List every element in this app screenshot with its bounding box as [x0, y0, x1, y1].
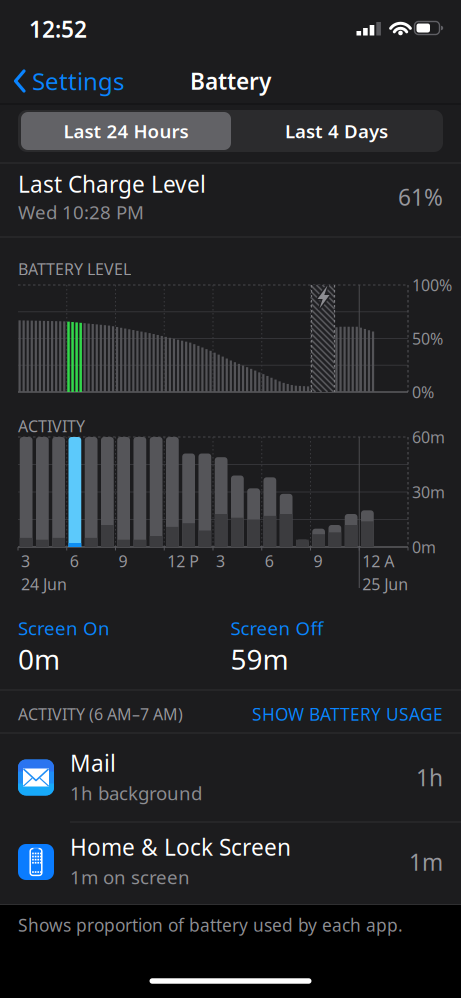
staticText: Screen Off — [230, 616, 323, 640]
staticText: 100% — [412, 274, 452, 296]
staticText: Mail — [70, 748, 116, 778]
staticText: 9 — [118, 550, 127, 572]
staticText: 24 Jun — [21, 573, 67, 595]
staticText: 3 — [21, 550, 30, 572]
staticText: Screen On — [18, 616, 110, 640]
staticText: 25 Jun — [362, 573, 408, 595]
staticText: 6 — [70, 550, 79, 572]
staticText: 1m — [409, 847, 443, 877]
staticText: Battery — [190, 66, 271, 96]
staticText: Wed 10:28 PM — [18, 200, 144, 224]
button[interactable]: Settings — [14, 59, 144, 103]
staticText: BATTERY LEVEL — [18, 258, 131, 280]
staticText: 3 — [216, 550, 225, 572]
staticText: Last 24 Hours — [63, 119, 188, 143]
staticText: 50% — [412, 328, 443, 349]
staticText: 1h — [416, 762, 443, 792]
staticText: 0m — [18, 640, 60, 678]
staticText: Home & Lock Screen — [70, 832, 291, 862]
staticText: 9 — [313, 550, 322, 572]
staticText: 12 P — [167, 550, 199, 572]
staticText: 6 — [265, 550, 274, 572]
staticText: 12:52 — [29, 14, 87, 44]
staticText: Last Charge Level — [18, 169, 206, 199]
staticText: 1m on screen — [70, 865, 190, 889]
staticText: 30m — [412, 481, 445, 503]
button[interactable]: Mail — [0, 733, 461, 822]
button[interactable]: Last 24 Hours — [20, 110, 232, 152]
staticText: SHOW BATTERY USAGE — [252, 702, 443, 725]
button[interactable]: Last 4 Days — [230, 110, 442, 152]
staticText: 60m — [412, 426, 445, 448]
button[interactable]: SHOW BATTERY USAGE — [223, 692, 443, 735]
staticText: ACTIVITY — [18, 415, 85, 437]
button[interactable]: Home & Lock Screen — [0, 822, 461, 905]
staticText: Settings — [32, 65, 124, 97]
staticText: Shows proportion of battery used by each… — [18, 913, 403, 936]
staticText: 0% — [412, 381, 434, 403]
staticText: 59m — [230, 640, 288, 678]
staticText: ACTIVITY (6 AM–7 AM) — [18, 703, 183, 725]
staticText: 12 A — [362, 550, 394, 572]
staticText: 0m — [412, 536, 436, 558]
staticText: 61% — [398, 182, 443, 212]
staticText: 1h background — [70, 781, 202, 805]
staticText: Last 4 Days — [285, 119, 388, 143]
